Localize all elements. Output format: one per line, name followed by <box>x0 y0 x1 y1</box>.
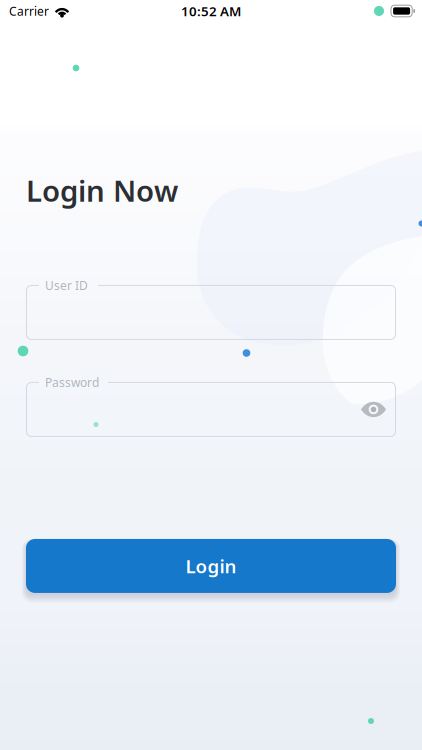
staticText: 10:52 AM <box>181 2 241 20</box>
staticText: Login Now <box>26 171 178 210</box>
staticText: Password <box>45 374 99 390</box>
staticText: User ID <box>45 277 88 293</box>
staticText: Login <box>185 554 236 578</box>
button[interactable]: Login <box>26 539 396 593</box>
staticText: Carrier <box>9 3 49 19</box>
